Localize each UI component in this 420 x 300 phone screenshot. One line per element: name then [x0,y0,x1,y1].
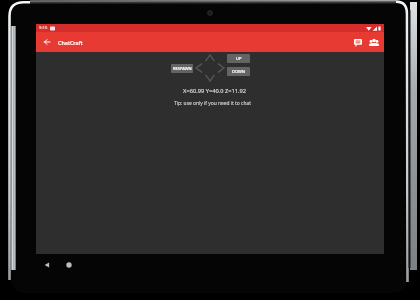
button[interactable]: Messages [350,35,365,50]
button[interactable]: Turn left [193,62,205,74]
staticText: UP [236,56,242,61]
button[interactable]: Home [60,256,77,273]
button[interactable]: RESPAWN [171,64,193,73]
button[interactable]: Move forward [204,52,216,64]
button[interactable]: Back [39,34,55,50]
button[interactable]: Back [38,256,55,273]
staticText: X=60.99 Y=40.0 Z=11.92 [183,87,246,95]
staticText: RESPAWN [173,66,192,71]
staticText: ChatCraft [58,39,83,46]
staticText: DOWN [232,69,245,74]
button[interactable]: UP [227,54,250,63]
staticText: Tip: use only if you need it to chat [174,100,251,107]
button[interactable]: Move back [204,72,216,84]
staticText: 9:15 [39,25,48,31]
button[interactable]: People [366,35,381,50]
button[interactable]: DOWN [227,67,250,76]
button[interactable]: Turn right [215,62,227,74]
